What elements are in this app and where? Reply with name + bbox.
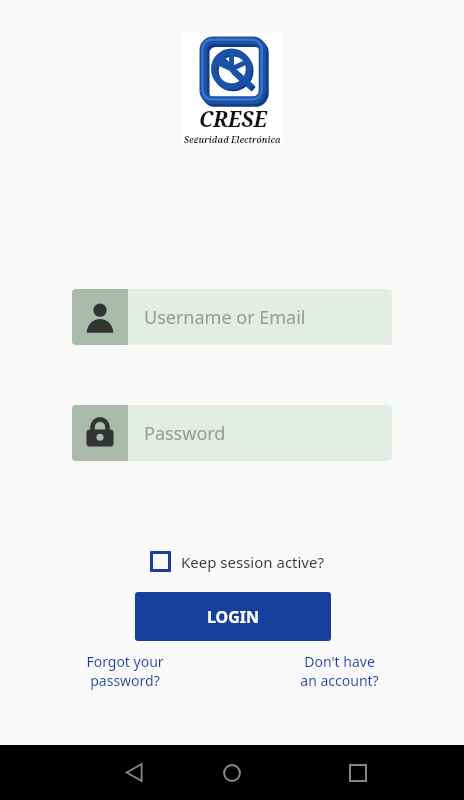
button[interactable]: LOGIN: [135, 592, 331, 641]
button[interactable]: Password: [72, 405, 392, 461]
other: Password: [72, 405, 128, 461]
button[interactable]: Back: [86, 745, 182, 800]
staticText: Password: [144, 421, 226, 446]
button[interactable]: Forgot your password?: [72, 652, 178, 690]
button[interactable]: Recent apps: [310, 745, 406, 800]
staticText: LOGIN: [207, 606, 260, 628]
staticText: Username or Email: [144, 305, 306, 330]
button[interactable]: Don't have an account?: [286, 652, 392, 690]
button[interactable]: Keep session active?: [144, 546, 330, 577]
staticText: CRESE: [199, 105, 267, 134]
button[interactable]: Home: [184, 745, 280, 800]
staticText: Forgot your password?: [86, 652, 164, 690]
staticText: Keep session active?: [181, 552, 324, 572]
button[interactable]: User: [72, 289, 392, 345]
staticText: Seguridad Electrónica: [184, 134, 281, 143]
other: User: [72, 289, 128, 345]
staticText: Don't have an account?: [300, 652, 379, 690]
